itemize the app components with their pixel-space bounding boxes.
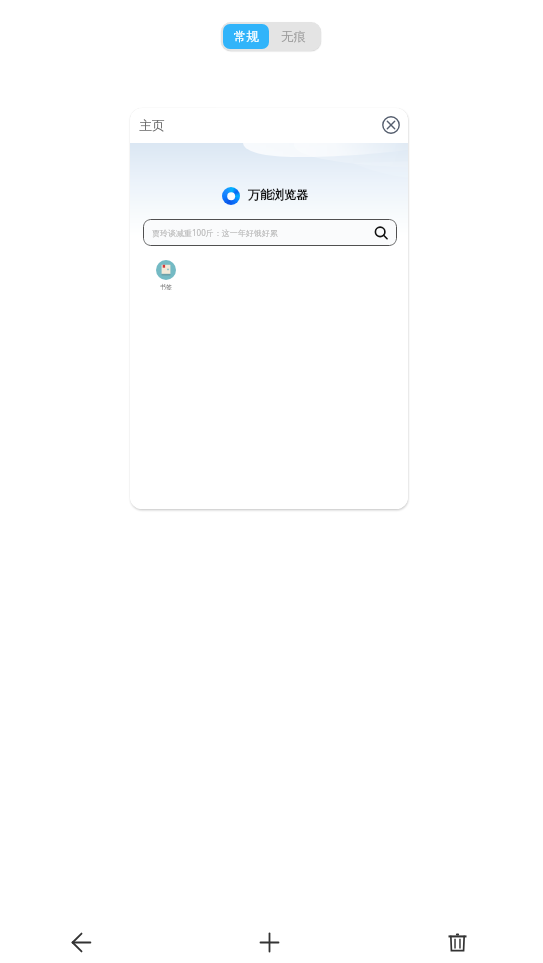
button[interactable]: Close tab (381, 115, 401, 135)
staticText: 主页 (139, 117, 165, 133)
button[interactable]: 常规 (223, 24, 269, 49)
button[interactable]: Bookmarks (156, 260, 176, 280)
staticText: 书签 (160, 283, 172, 291)
staticText: 常规 (234, 29, 259, 45)
staticText: 贾玲谈减重100斤：这一年好饿好累 (152, 227, 278, 238)
button[interactable]: 主页 (130, 108, 408, 509)
button[interactable]: New tab (239, 912, 300, 963)
button[interactable]: 贾玲谈减重100斤：这一年好饿好累 (143, 219, 397, 246)
staticText: 万能浏览器 (248, 187, 308, 202)
button[interactable]: Back (51, 912, 112, 963)
staticText: 无痕 (281, 29, 306, 45)
button[interactable]: 无痕 (268, 22, 318, 51)
button[interactable]: Close all tabs (427, 912, 488, 963)
